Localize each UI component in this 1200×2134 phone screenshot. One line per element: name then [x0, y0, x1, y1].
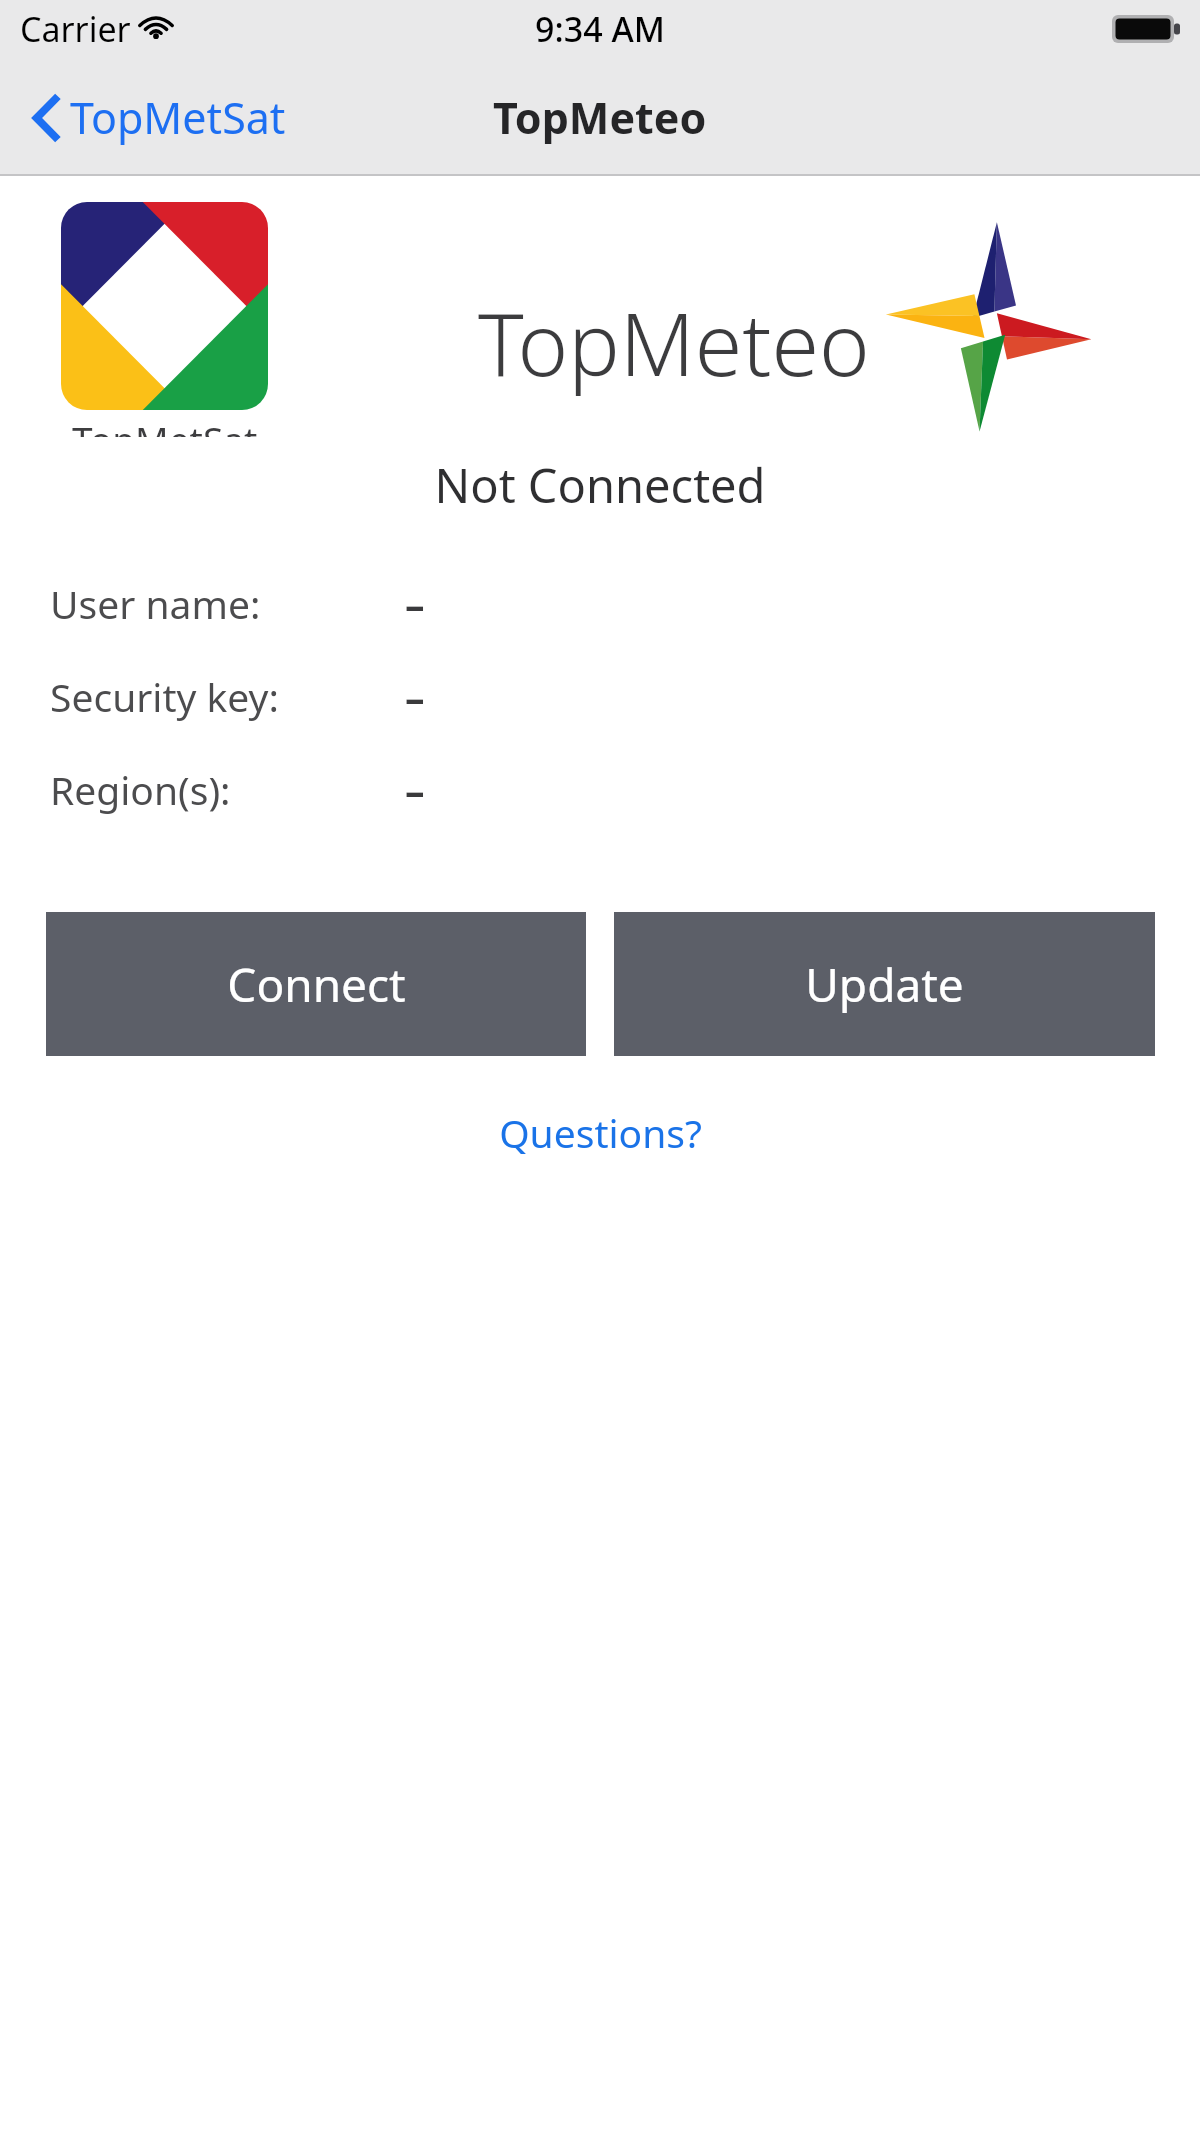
staticText: 9:34 AM [535, 6, 665, 52]
staticText: Questions? [499, 1106, 702, 1159]
button[interactable]: Back [0, 78, 302, 157]
staticText: Connect [227, 953, 406, 1016]
staticText: Not Connected [0, 453, 1200, 517]
staticText: Carrier [20, 6, 131, 52]
staticText: User name: [50, 577, 261, 630]
button[interactable]: Connect [46, 912, 586, 1056]
staticText: – [405, 577, 425, 630]
button[interactable]: Questions? [0, 1106, 1200, 1159]
staticText: Update [805, 953, 964, 1016]
button[interactable]: Update [614, 912, 1155, 1056]
staticText: TopMetSat [72, 414, 258, 437]
other: Back [34, 95, 60, 141]
staticText: TopMetSat [70, 88, 286, 147]
staticText: Security key: [50, 670, 279, 723]
staticText: TopMeteo [493, 88, 707, 147]
staticText: Region(s): [50, 763, 231, 816]
staticText: – [405, 670, 425, 723]
staticText: TopMeteo [478, 284, 870, 401]
staticText: – [405, 763, 425, 816]
